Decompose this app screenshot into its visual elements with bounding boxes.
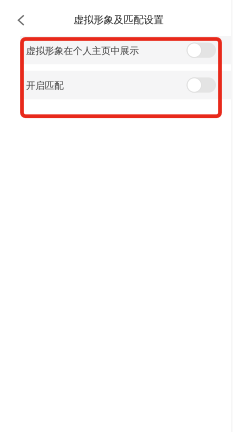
staticText: 虚拟形象及匹配设置 [73, 14, 163, 26]
button[interactable]: 虚拟形象在个人主页中展示 [20, 36, 231, 64]
button[interactable]: Back [9, 7, 33, 33]
staticText: 虚拟形象在个人主页中展示 [26, 45, 138, 57]
button[interactable]: 开启匹配 [20, 71, 231, 99]
staticText: 开启匹配 [26, 80, 63, 91]
